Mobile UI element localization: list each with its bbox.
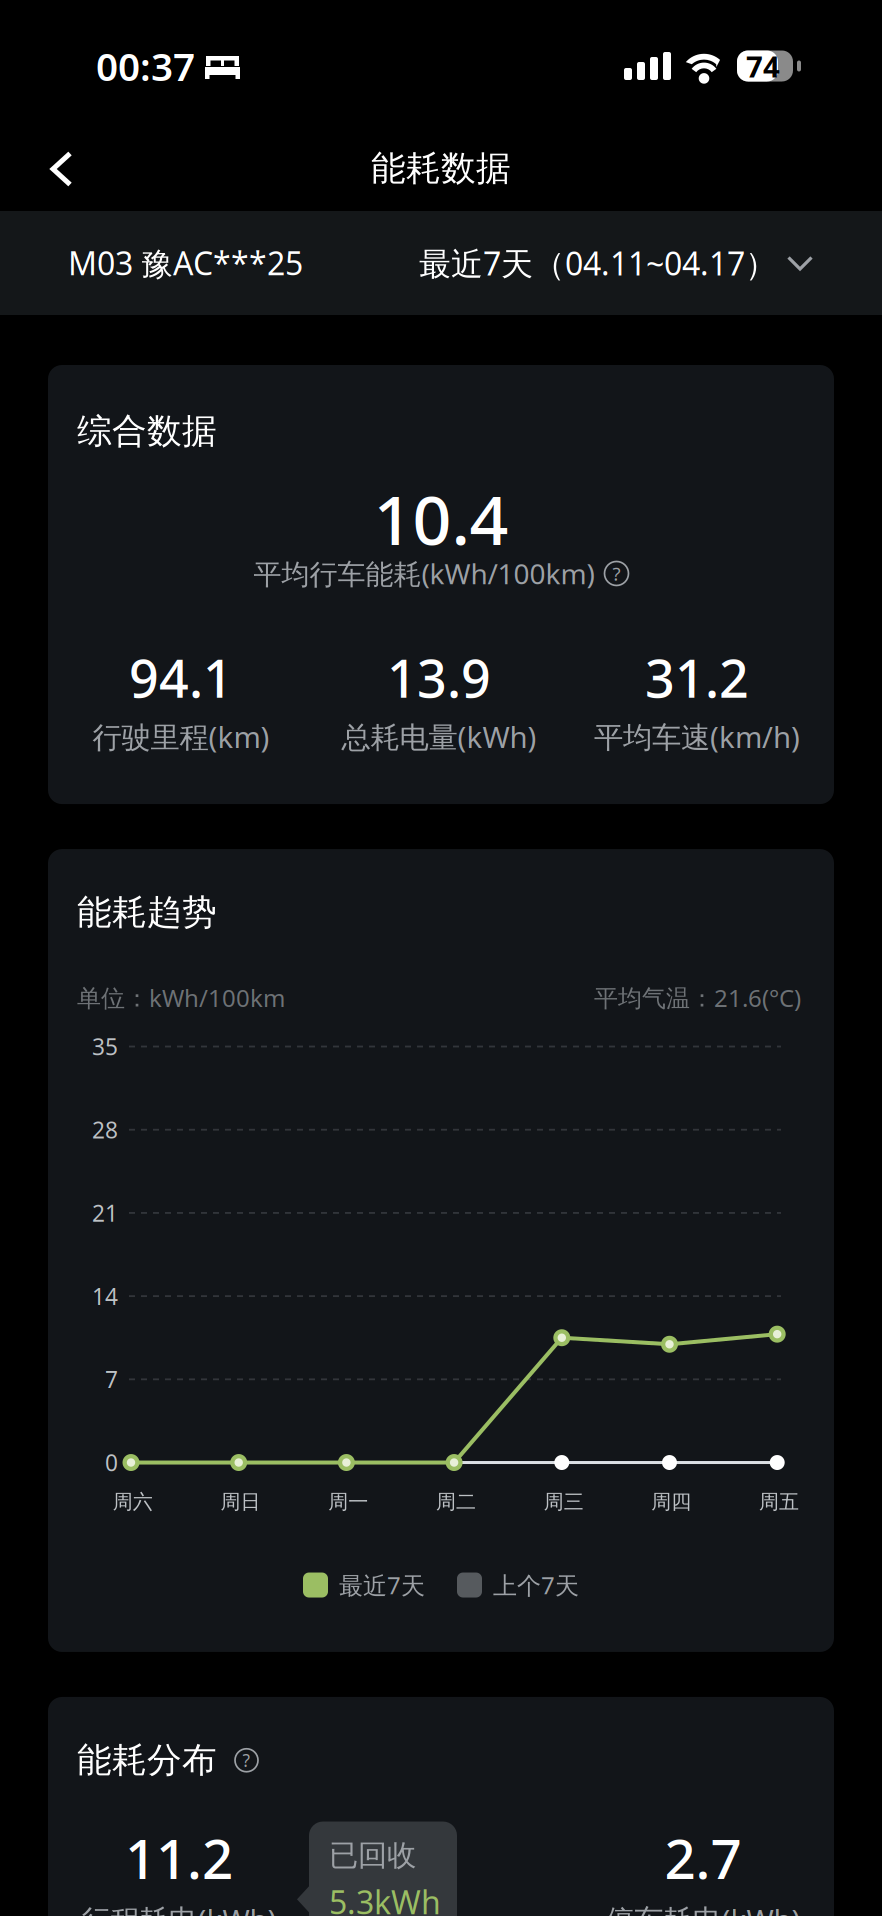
staticText: 14 <box>92 1281 118 1311</box>
button[interactable]: 返回 <box>0 110 102 210</box>
staticText: 平均气温：21.6(°C) <box>594 982 801 1014</box>
staticText: 已回收 <box>329 1837 416 1873</box>
button[interactable]: M03 豫AC***25 <box>0 209 317 317</box>
staticText: 2.7 <box>664 1821 741 1894</box>
staticText: 周日 <box>220 1489 260 1514</box>
staticText: 10.4 <box>373 474 508 564</box>
staticText: 周四 <box>651 1489 691 1514</box>
staticText: 00:37 <box>96 40 195 92</box>
staticText: 能耗分布 <box>77 1739 217 1782</box>
staticText: 13.9 <box>387 643 491 712</box>
button[interactable]: 最近7天（04.11~04.17） <box>405 209 882 317</box>
staticText: 21 <box>92 1198 118 1228</box>
staticText: 行程耗电(kWh) <box>81 1900 276 1916</box>
staticText: 平均行车能耗(kWh/100km) <box>253 555 594 592</box>
staticText: 能耗数据 <box>371 147 511 190</box>
staticText: ? <box>242 1749 250 1772</box>
staticText: 周六 <box>113 1489 153 1514</box>
staticText: 7 <box>105 1364 118 1394</box>
staticText: 31.2 <box>645 643 749 712</box>
staticText: 周五 <box>759 1489 799 1514</box>
staticText: 周三 <box>544 1489 584 1514</box>
staticText: 行驶里程(km) <box>92 717 269 756</box>
staticText: 94.1 <box>129 643 233 712</box>
staticText: 周一 <box>328 1489 368 1514</box>
staticText: 28 <box>92 1115 118 1145</box>
staticText: ? <box>612 561 620 586</box>
staticText: M03 豫AC***25 <box>68 242 303 284</box>
staticText: 11.2 <box>125 1821 233 1894</box>
staticText: 单位：kWh/100km <box>77 982 285 1014</box>
staticText: 5.3kWh <box>329 1881 441 1916</box>
staticText: 最近7天（04.11~04.17） <box>419 242 777 284</box>
staticText: 74 <box>746 46 780 85</box>
staticText: 上个7天 <box>493 1569 579 1601</box>
staticText: 0 <box>105 1447 118 1478</box>
staticText: 总耗电量(kWh) <box>341 717 536 756</box>
staticText: 平均车速(km/h) <box>594 717 800 756</box>
staticText: 周二 <box>436 1489 476 1514</box>
staticText: 最近7天 <box>339 1569 425 1601</box>
staticText: 综合数据 <box>77 410 217 453</box>
staticText: 停车耗电(kWh) <box>605 1900 800 1916</box>
staticText: 35 <box>92 1031 118 1062</box>
staticText: 能耗趋势 <box>77 891 217 934</box>
